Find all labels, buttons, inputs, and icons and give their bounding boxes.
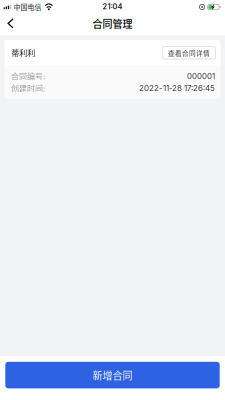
staticText: 合同编号: — [11, 70, 45, 82]
staticText: 蒂利利 — [11, 47, 35, 59]
button[interactable]: 返回 — [0, 14, 22, 35]
staticText: 000001 — [187, 71, 215, 81]
staticText: 2022-11-28 17:26:45 — [139, 83, 215, 93]
staticText: 21:04 — [102, 2, 122, 11]
staticText: 查看合同详情 — [168, 48, 210, 58]
button[interactable]: 新增合同 — [5, 362, 220, 388]
staticText: 创建时间: — [11, 82, 45, 94]
staticText: 合同管理 — [92, 16, 132, 31]
staticText: 新增合同 — [92, 368, 132, 382]
staticText: 中国电信 — [13, 2, 41, 12]
button[interactable]: 查看合同详情 — [162, 46, 215, 59]
